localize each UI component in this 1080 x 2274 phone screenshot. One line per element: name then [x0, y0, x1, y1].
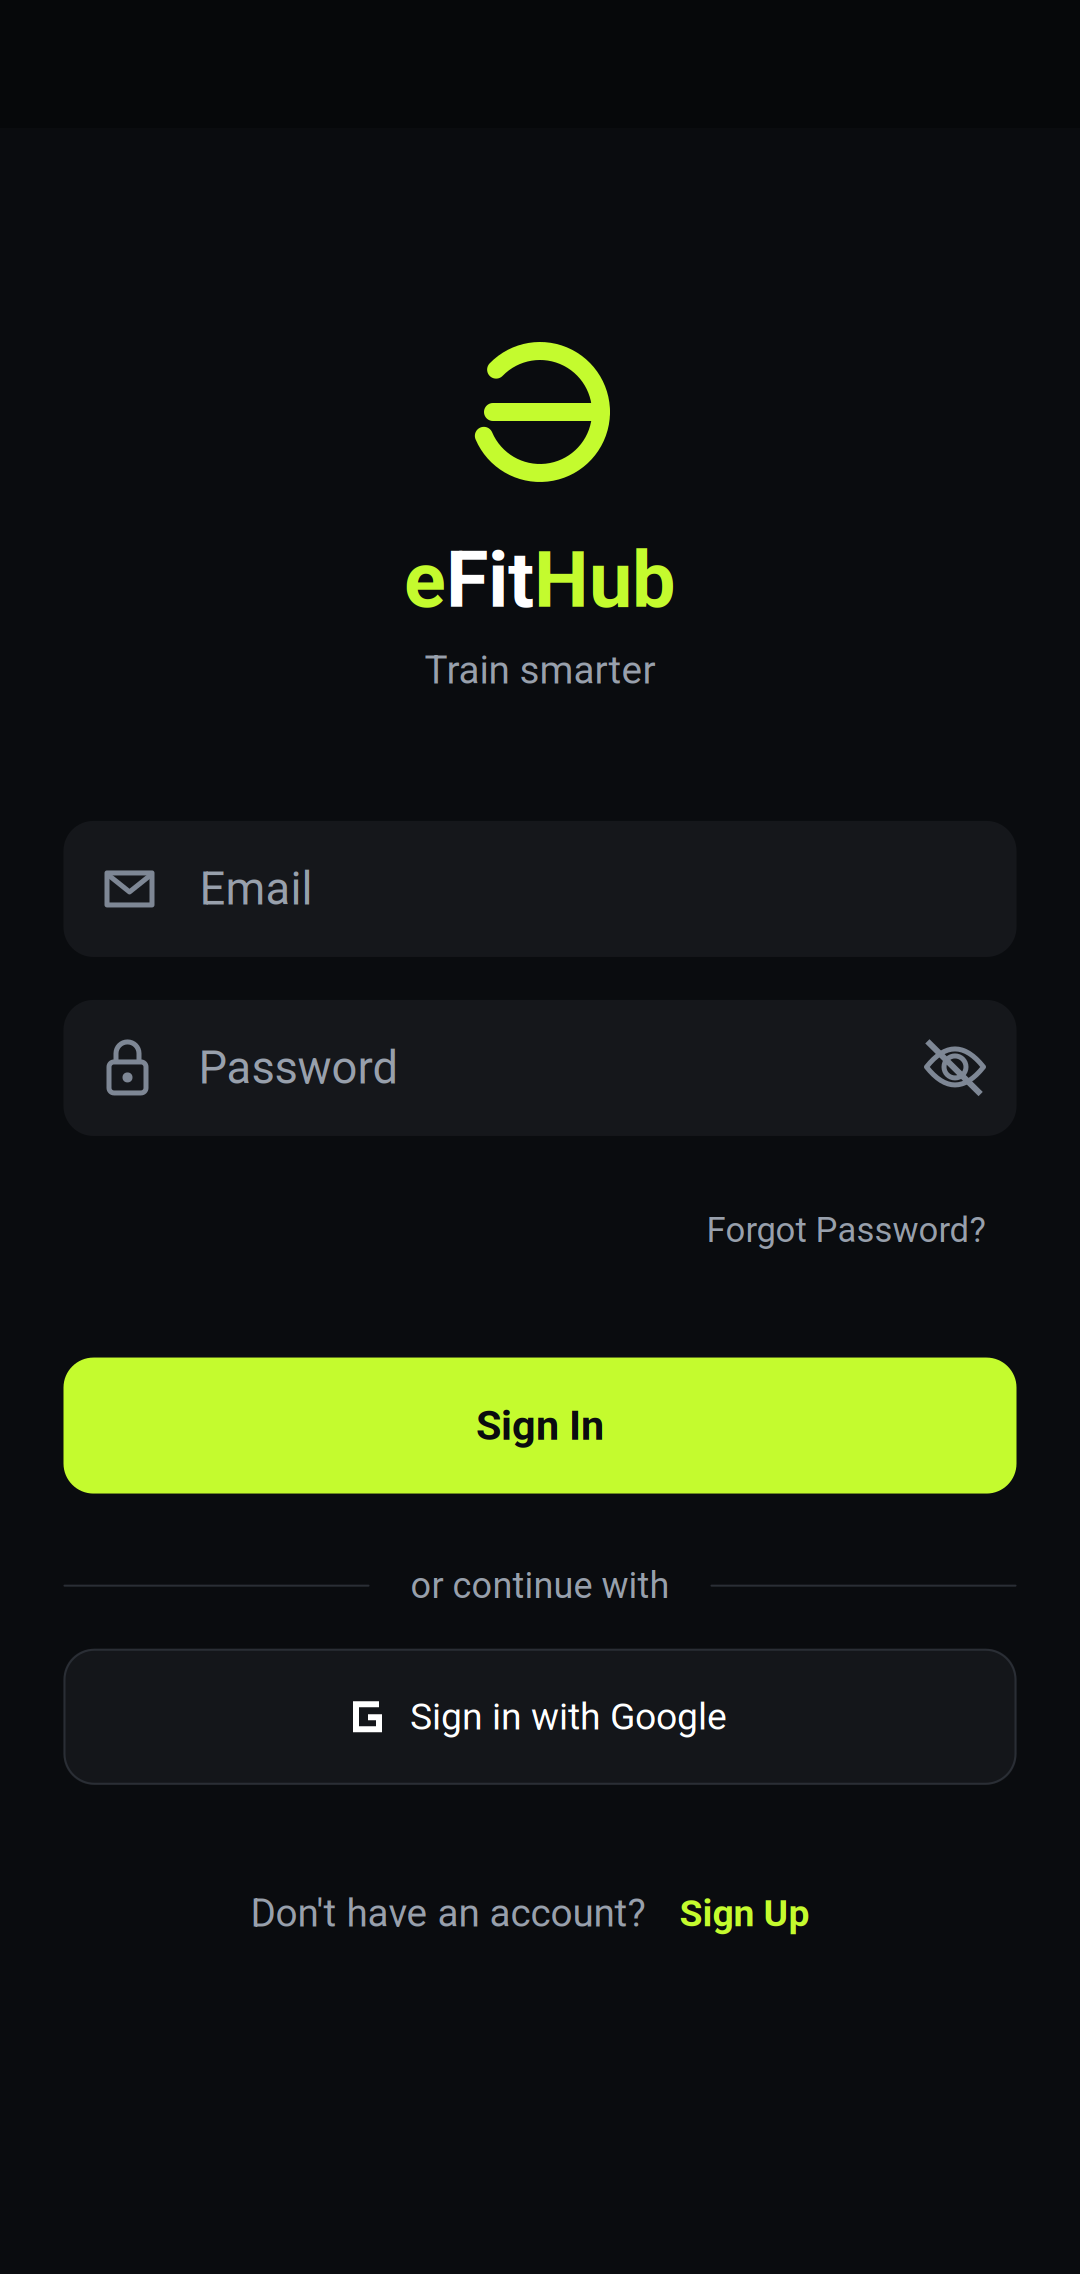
staticText: Sign Up [679, 1891, 809, 1935]
staticText: Don't have an account? [250, 1891, 645, 1936]
staticText: Forgot Password? [706, 1210, 985, 1250]
staticText: Password [198, 1041, 398, 1094]
staticText: Sign In [476, 1401, 604, 1450]
staticText: Train smarter [424, 648, 655, 693]
staticText: Email [199, 862, 312, 915]
button[interactable]: Sign in with Google [63, 1649, 1016, 1785]
button[interactable]: Forgot Password? [706, 1210, 1016, 1250]
button[interactable]: Sign Up [679, 1891, 829, 1935]
staticText: Fit [446, 535, 534, 626]
button[interactable]: Sign In [63, 1358, 1016, 1494]
staticText: or continue with [410, 1565, 669, 1607]
staticText: Sign in with Google [410, 1695, 727, 1739]
staticText: e [404, 535, 446, 626]
button[interactable]: Password [63, 1000, 1016, 1136]
button[interactable]: Email [63, 821, 1016, 957]
staticText: Hub [534, 535, 676, 626]
